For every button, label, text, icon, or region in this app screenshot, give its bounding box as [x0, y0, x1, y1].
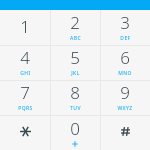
staticText: 3 [120, 11, 130, 34]
staticText: 9 [120, 81, 130, 104]
staticText: 2 [70, 11, 80, 34]
staticText: 7 [20, 81, 30, 104]
button[interactable]: Dial 4 [0, 45, 50, 80]
staticText: 5 [70, 46, 80, 69]
button[interactable]: Dial 7 [0, 80, 50, 115]
staticText: GHI [20, 70, 31, 77]
staticText: JKL [71, 70, 80, 77]
button[interactable]: Dial 5 [50, 45, 100, 80]
button[interactable]: Dial 1 [0, 10, 50, 45]
staticText: WXYZ [117, 105, 133, 112]
staticText: 8 [70, 81, 80, 104]
staticText: TUV [70, 105, 81, 112]
button[interactable]: Dial # [100, 115, 150, 150]
button[interactable]: Dial 0 [50, 115, 100, 150]
staticText: MNO [118, 70, 132, 77]
staticText: 6 [120, 46, 130, 69]
button[interactable]: Dial 6 [100, 45, 150, 80]
staticText: 4 [20, 46, 30, 69]
button[interactable]: Dial * [0, 115, 50, 150]
button[interactable]: Dial 9 [100, 80, 150, 115]
button[interactable]: Dial 3 [100, 10, 150, 45]
staticText: PQRS [18, 105, 33, 112]
button[interactable]: Dial 2 [50, 10, 100, 45]
staticText: DEF [120, 35, 131, 42]
button[interactable]: Dial 8 [50, 80, 100, 115]
staticText: 0 [70, 117, 80, 140]
staticText: ABC [70, 35, 81, 42]
staticText: 1 [20, 15, 30, 38]
